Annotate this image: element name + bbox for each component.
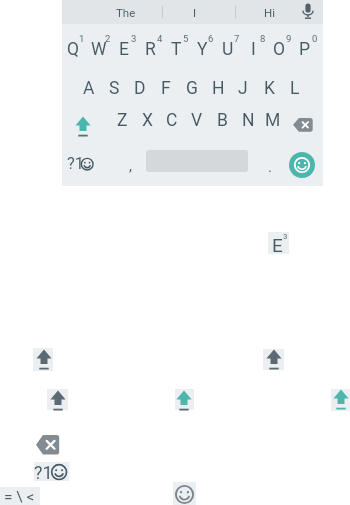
staticText: .: [268, 158, 272, 176]
button[interactable]: I: [165, 0, 225, 28]
staticText: F: [161, 78, 171, 99]
button[interactable]: T: [146, 33, 206, 65]
staticText: The: [116, 6, 136, 19]
button[interactable]: M: [243, 104, 303, 136]
button[interactable]: [330, 389, 350, 411]
button[interactable]: C: [142, 104, 202, 136]
staticText: 4: [157, 33, 163, 44]
button[interactable]: S: [84, 72, 144, 104]
button[interactable]: X: [117, 104, 177, 136]
staticText: M: [265, 110, 281, 131]
staticText: P: [299, 39, 311, 60]
button[interactable]: [263, 349, 285, 371]
staticText: Y: [197, 39, 208, 60]
staticText: N: [242, 110, 255, 131]
button[interactable]: ?1: [46, 147, 106, 179]
button[interactable]: H: [188, 72, 248, 104]
staticText: X: [142, 110, 153, 131]
staticText: U: [222, 39, 234, 60]
staticText: E: [119, 39, 129, 60]
staticText: H: [212, 78, 225, 99]
button[interactable]: K: [239, 72, 299, 104]
button[interactable]: P: [275, 33, 335, 65]
button[interactable]: Y: [172, 33, 232, 65]
staticText: Q: [67, 39, 80, 60]
staticText: G: [186, 78, 198, 99]
button[interactable]: L: [265, 72, 325, 104]
button[interactable]: W: [69, 33, 129, 65]
staticText: L: [290, 78, 300, 99]
staticText: E: [272, 234, 283, 256]
staticText: ?1: [67, 154, 85, 173]
button[interactable]: U: [198, 33, 258, 65]
button[interactable]: V: [167, 104, 227, 136]
staticText: S: [109, 78, 120, 99]
button[interactable]: The: [96, 0, 156, 28]
button[interactable]: [293, 118, 313, 132]
staticText: 0: [312, 33, 318, 44]
button[interactable]: N: [218, 104, 278, 136]
staticText: 3: [283, 232, 288, 241]
button[interactable]: D: [110, 72, 170, 104]
button[interactable]: [300, 3, 316, 20]
button[interactable]: [47, 390, 69, 412]
staticText: O: [273, 39, 286, 60]
staticText: Z: [117, 110, 128, 131]
staticText: J: [238, 78, 248, 99]
staticText: ,: [129, 157, 132, 175]
button[interactable]: [33, 349, 55, 371]
button[interactable]: Hi: [240, 0, 300, 28]
button[interactable]: .: [240, 151, 300, 183]
staticText: I: [193, 6, 197, 19]
staticText: 6: [208, 33, 214, 44]
button[interactable]: [0, 487, 40, 505]
staticText: 3: [131, 33, 137, 44]
staticText: = \ <: [4, 488, 35, 505]
button[interactable]: E: [94, 33, 154, 65]
staticText: Hi: [264, 6, 276, 19]
staticText: A: [83, 78, 95, 99]
staticText: 2: [105, 33, 111, 44]
staticText: K: [264, 78, 275, 99]
staticText: C: [166, 110, 178, 131]
button[interactable]: [173, 390, 195, 412]
staticText: R: [145, 39, 156, 60]
button[interactable]: I: [223, 33, 283, 65]
staticText: 5: [183, 33, 189, 44]
button[interactable]: J: [213, 72, 273, 104]
button[interactable]: R: [120, 33, 180, 65]
button[interactable]: [34, 462, 69, 481]
staticText: ?1: [34, 462, 53, 483]
staticText: B: [217, 110, 228, 131]
button[interactable]: [268, 232, 289, 254]
staticText: V: [191, 110, 203, 131]
staticText: T: [171, 39, 182, 60]
staticText: 9: [286, 33, 292, 44]
button[interactable]: Z: [92, 104, 152, 136]
button[interactable]: [173, 482, 196, 505]
button[interactable]: F: [136, 72, 196, 104]
button[interactable]: Q: [43, 33, 103, 65]
staticText: 1: [79, 33, 85, 44]
button[interactable]: A: [59, 72, 119, 104]
button[interactable]: [289, 152, 315, 178]
staticText: I: [251, 39, 256, 60]
staticText: 8: [260, 33, 266, 44]
staticText: 7: [234, 33, 240, 44]
button[interactable]: B: [192, 104, 252, 136]
staticText: D: [134, 78, 146, 99]
button[interactable]: [36, 435, 59, 455]
button[interactable]: G: [162, 72, 222, 104]
button[interactable]: [72, 116, 94, 138]
button[interactable]: O: [249, 33, 309, 65]
staticText: W: [91, 39, 107, 60]
button[interactable]: ,: [100, 150, 160, 182]
